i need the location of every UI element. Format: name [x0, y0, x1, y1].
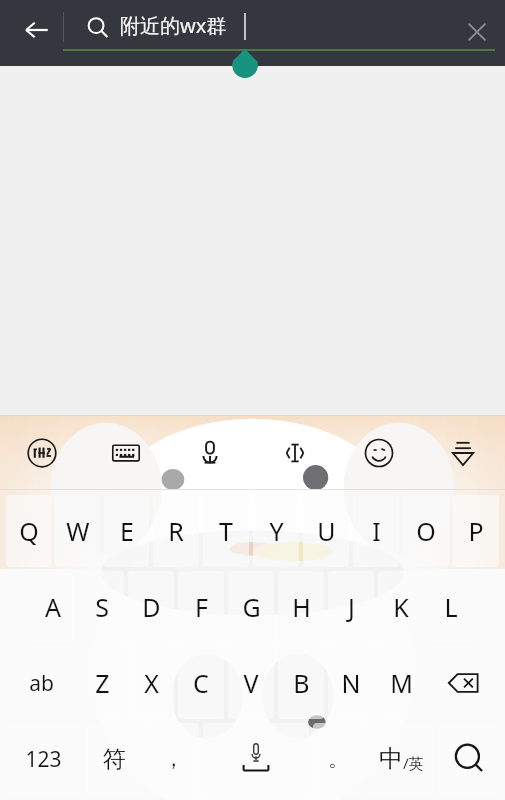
button[interactable]: 123 — [6, 723, 81, 795]
button[interactable]: F — [178, 571, 224, 643]
staticText: X — [144, 666, 159, 700]
button[interactable]: ， — [148, 723, 199, 795]
button[interactable]: Back — [8, 0, 64, 60]
button[interactable]: 中 — [368, 723, 434, 795]
button[interactable]: Space — [203, 723, 309, 795]
staticText: M — [390, 666, 413, 700]
staticText: P — [468, 514, 484, 548]
button[interactable]: J — [328, 571, 374, 643]
button[interactable]: Backspace — [428, 647, 499, 719]
button[interactable]: E — [104, 495, 149, 567]
staticText: /英 — [403, 753, 424, 773]
staticText: R — [168, 514, 184, 548]
staticText: W — [66, 514, 90, 548]
staticText: Q — [19, 514, 39, 548]
staticText: ab — [29, 669, 54, 698]
button[interactable]: Y — [253, 495, 299, 567]
button[interactable]: P — [453, 495, 499, 567]
staticText: A — [45, 590, 61, 624]
button[interactable]: Keyboard layout — [97, 418, 155, 488]
staticText: 。 — [328, 746, 349, 772]
staticText: L — [444, 590, 458, 624]
staticText: 符 — [103, 745, 126, 774]
button[interactable]: M — [378, 647, 424, 719]
button[interactable]: Hide keyboard — [434, 418, 492, 488]
button[interactable]: W — [55, 495, 100, 567]
staticText: G — [242, 590, 261, 624]
button[interactable]: V — [228, 647, 274, 719]
staticText: Z — [95, 666, 110, 700]
button[interactable]: H — [278, 571, 324, 643]
button[interactable]: Voice input — [181, 418, 239, 488]
staticText: H — [292, 590, 311, 624]
staticText: E — [120, 514, 134, 548]
staticText: T — [219, 514, 233, 548]
button[interactable]: X — [129, 647, 174, 719]
button[interactable]: A — [30, 571, 75, 643]
button[interactable]: U — [303, 495, 349, 567]
button[interactable]: Emoji — [350, 418, 408, 488]
staticText: Y — [269, 514, 284, 548]
staticText: 附近的wx群 — [120, 12, 227, 39]
button[interactable]: D — [128, 571, 174, 643]
staticText: K — [393, 590, 409, 624]
button[interactable]: S — [79, 571, 124, 643]
button[interactable]: O — [403, 495, 449, 567]
staticText: C — [193, 666, 209, 700]
button[interactable]: N — [328, 647, 374, 719]
button[interactable]: Search — [438, 723, 499, 795]
button[interactable]: I — [353, 495, 399, 567]
staticText: D — [142, 590, 161, 624]
staticText: B — [293, 666, 310, 700]
button[interactable]: T — [203, 495, 249, 567]
button[interactable]: Q — [6, 495, 51, 567]
staticText: F — [195, 590, 208, 624]
button[interactable]: B — [278, 647, 324, 719]
button[interactable]: R — [153, 495, 199, 567]
staticText: N — [341, 666, 361, 700]
button[interactable]: Input method logo — [13, 418, 71, 488]
button[interactable]: L — [428, 571, 474, 643]
staticText: J — [348, 590, 355, 624]
button[interactable]: C — [178, 647, 224, 719]
button[interactable]: K — [378, 571, 424, 643]
button[interactable]: Clear search — [449, 4, 505, 60]
staticText: 123 — [25, 745, 62, 774]
button[interactable]: G — [228, 571, 274, 643]
staticText: 中 — [379, 744, 403, 774]
button[interactable]: Move cursor — [266, 418, 324, 488]
button[interactable]: ab — [6, 647, 76, 719]
button[interactable]: 。 — [313, 723, 364, 795]
staticText: O — [416, 514, 436, 548]
staticText: U — [317, 514, 336, 548]
button[interactable]: 符 — [85, 723, 144, 795]
staticText: I — [372, 514, 381, 548]
staticText: V — [243, 666, 259, 700]
staticText: S — [95, 590, 109, 624]
staticText: ， — [163, 746, 184, 772]
button[interactable]: Z — [80, 647, 125, 719]
